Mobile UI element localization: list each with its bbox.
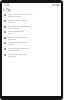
staticText: Vacation [8,38,17,41]
button[interactable]: Dental and vision [2,18,61,24]
staticText: Commuter benefit [8,46,29,49]
staticText: Medical cover [8,15,21,18]
staticText: Courses [8,55,16,58]
staticText: Learning stipend [8,52,27,55]
staticText: Wellness program [8,40,29,43]
staticText: Health insurance plan [8,12,33,15]
button[interactable]: Commuter benefit [2,46,61,52]
staticText: 9:30 [4,3,10,7]
staticText: Paid time off days [8,35,29,38]
staticText: Dental [8,21,15,24]
staticText: 401k match [8,27,19,30]
button[interactable]: Wellness program [2,40,61,46]
staticText: Transit pass [8,49,20,52]
staticText: Family [8,32,15,35]
staticText: Life insurance [8,29,24,32]
button[interactable]: Life insurance [2,29,61,35]
button[interactable]: Learning stipend [2,52,61,58]
staticText: Fitness [8,43,15,46]
button[interactable]: Retirement savings [2,24,61,30]
staticText: Retirement savings [8,24,30,27]
staticText: Dental and vision [8,18,28,21]
button[interactable]: Health insurance plan [2,12,61,18]
button[interactable]: Back [2,8,6,12]
staticText: Pay [6,8,11,12]
button[interactable]: Paid time off days [2,35,61,41]
